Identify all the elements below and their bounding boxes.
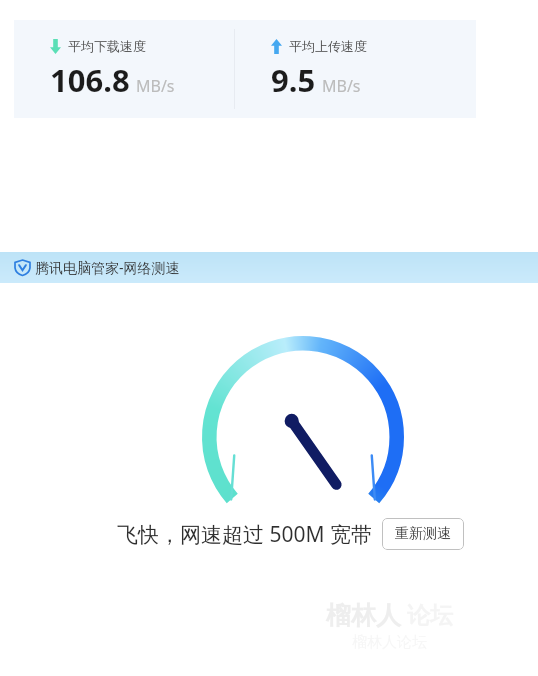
staticText: 重新测速 <box>395 525 451 543</box>
staticText: 平均下载速度 <box>68 38 146 54</box>
staticText: 论坛 <box>407 601 453 630</box>
staticText: MB/s <box>322 75 361 97</box>
staticText: MB/s <box>136 75 175 97</box>
staticText: 106.8 <box>50 59 130 101</box>
staticText: 9.5 <box>271 59 316 101</box>
staticText: 平均上传速度 <box>289 38 367 54</box>
staticText: 飞快，网速超过 500M 宽带 <box>117 520 373 549</box>
staticText: 榴林人 <box>326 600 401 631</box>
other: Upload <box>271 39 282 54</box>
other: Tencent PC Manager <box>14 259 31 276</box>
staticText: 榴林人论坛 <box>352 633 427 652</box>
button[interactable]: Tencent PC Manager <box>0 252 538 283</box>
other: Download <box>50 39 61 54</box>
button[interactable]: Download <box>14 20 234 118</box>
button[interactable]: Upload <box>235 20 476 118</box>
button[interactable]: 重新测速 <box>382 518 464 550</box>
staticText: 腾讯电脑管家-网络测速 <box>35 258 180 277</box>
